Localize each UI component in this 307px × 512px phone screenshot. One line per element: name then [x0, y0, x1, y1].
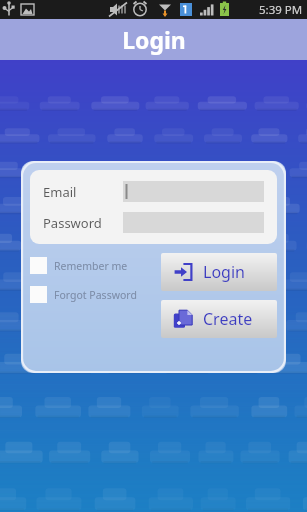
- staticText: Forgot Password: [54, 288, 137, 302]
- other: Create account: [173, 309, 193, 329]
- staticText: Login: [203, 261, 245, 283]
- other: Login: [173, 262, 193, 282]
- button[interactable]: [123, 181, 264, 202]
- staticText: 5:39 PM: [259, 2, 303, 18]
- staticText: Password: [43, 214, 102, 232]
- button[interactable]: Login: [161, 253, 277, 291]
- button[interactable]: Forgot Password: [30, 286, 141, 303]
- button[interactable]: Create account: [161, 300, 277, 338]
- staticText: Email: [43, 183, 77, 201]
- staticText: Create: [203, 308, 253, 330]
- button[interactable]: Remember me: [30, 257, 132, 274]
- staticText: Remember me: [54, 259, 128, 273]
- staticText: Login: [122, 24, 186, 55]
